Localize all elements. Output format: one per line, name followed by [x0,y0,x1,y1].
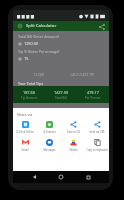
button[interactable]: CLEAR [18,69,61,79]
button[interactable]: Nimbo [61,139,85,152]
staticText: 187.50 [23,90,35,95]
button[interactable]: 187.50 [13,86,45,103]
button[interactable]: App icon [16,22,24,30]
staticText: 15 [24,56,29,61]
staticText: Copy to clipboard [86,148,108,152]
button[interactable]: 1437.50 [45,86,77,103]
staticText: Tip % (Enter Percentage) [18,49,60,54]
button[interactable]: 479.17 [77,86,109,103]
staticText: Your Total Tips [18,81,44,86]
staticText: CLEAR [34,72,45,77]
staticText: Q-Desk Online [16,130,34,134]
staticText: Send via URL [89,130,105,134]
button[interactable]: Save to QS [61,121,85,134]
staticText: Total Bill (Enter Amount) [18,34,59,39]
button[interactable]: Send via URL [85,121,109,134]
staticText: 1250.00 [24,41,39,46]
button[interactable]: Q-Scanner [37,121,61,134]
staticText: Share via [17,112,33,117]
button[interactable]: Share [97,22,106,31]
button[interactable]: Recent apps [83,172,93,182]
staticText: Per Person [85,96,101,100]
staticText: CALCULATE TIP [70,72,95,77]
staticText: Tip Amount [21,96,38,100]
button[interactable]: Back [30,172,40,182]
staticText: Split Calculator [26,23,57,29]
staticText: Save to QS [67,130,80,134]
button[interactable]: Messages [37,139,61,152]
staticText: Q-Scanner [43,130,56,134]
button[interactable]: Gmail [13,139,37,152]
staticText: Gmail [21,148,29,152]
button[interactable]: CALCULATE TIP [61,69,104,79]
button[interactable]: Q-Desk Online [13,121,37,134]
button[interactable]: Home [56,172,66,182]
staticText: Nimbo [69,148,78,152]
button[interactable]: Copy to clipboard [85,139,109,152]
staticText: 1437.50 [54,90,69,95]
staticText: Messages [43,148,56,152]
staticText: 479.17 [87,90,99,95]
staticText: Total Bill [55,96,67,100]
